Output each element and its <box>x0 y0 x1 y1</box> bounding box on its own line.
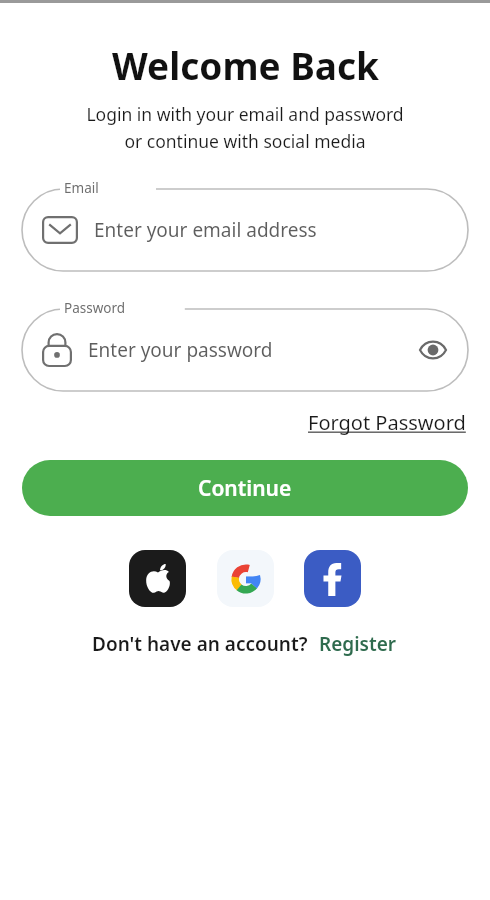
button[interactable]: Sign in with Google <box>217 550 274 607</box>
staticText: Continue <box>198 474 292 503</box>
button[interactable]: Enter your email address <box>22 189 468 271</box>
button[interactable]: Continue <box>22 460 468 516</box>
staticText: Welcome Back <box>112 40 379 90</box>
button[interactable]: Show password <box>416 333 450 367</box>
button[interactable]: Register <box>317 629 399 659</box>
staticText: Don't have an account? <box>92 631 308 657</box>
button[interactable]: Enter your password <box>22 309 468 391</box>
button[interactable]: Sign in with Apple <box>129 550 186 607</box>
staticText: Enter your email address <box>94 217 317 243</box>
staticText: Email <box>64 179 99 197</box>
button[interactable]: Forgot Password <box>306 407 468 438</box>
staticText: Forgot Password <box>308 409 466 436</box>
staticText: Enter your password <box>88 337 273 363</box>
button[interactable]: Sign in with Facebook <box>304 550 361 607</box>
staticText: Password <box>64 299 126 317</box>
staticText: Register <box>319 631 397 657</box>
staticText: Login in with your email and password or… <box>86 102 404 153</box>
